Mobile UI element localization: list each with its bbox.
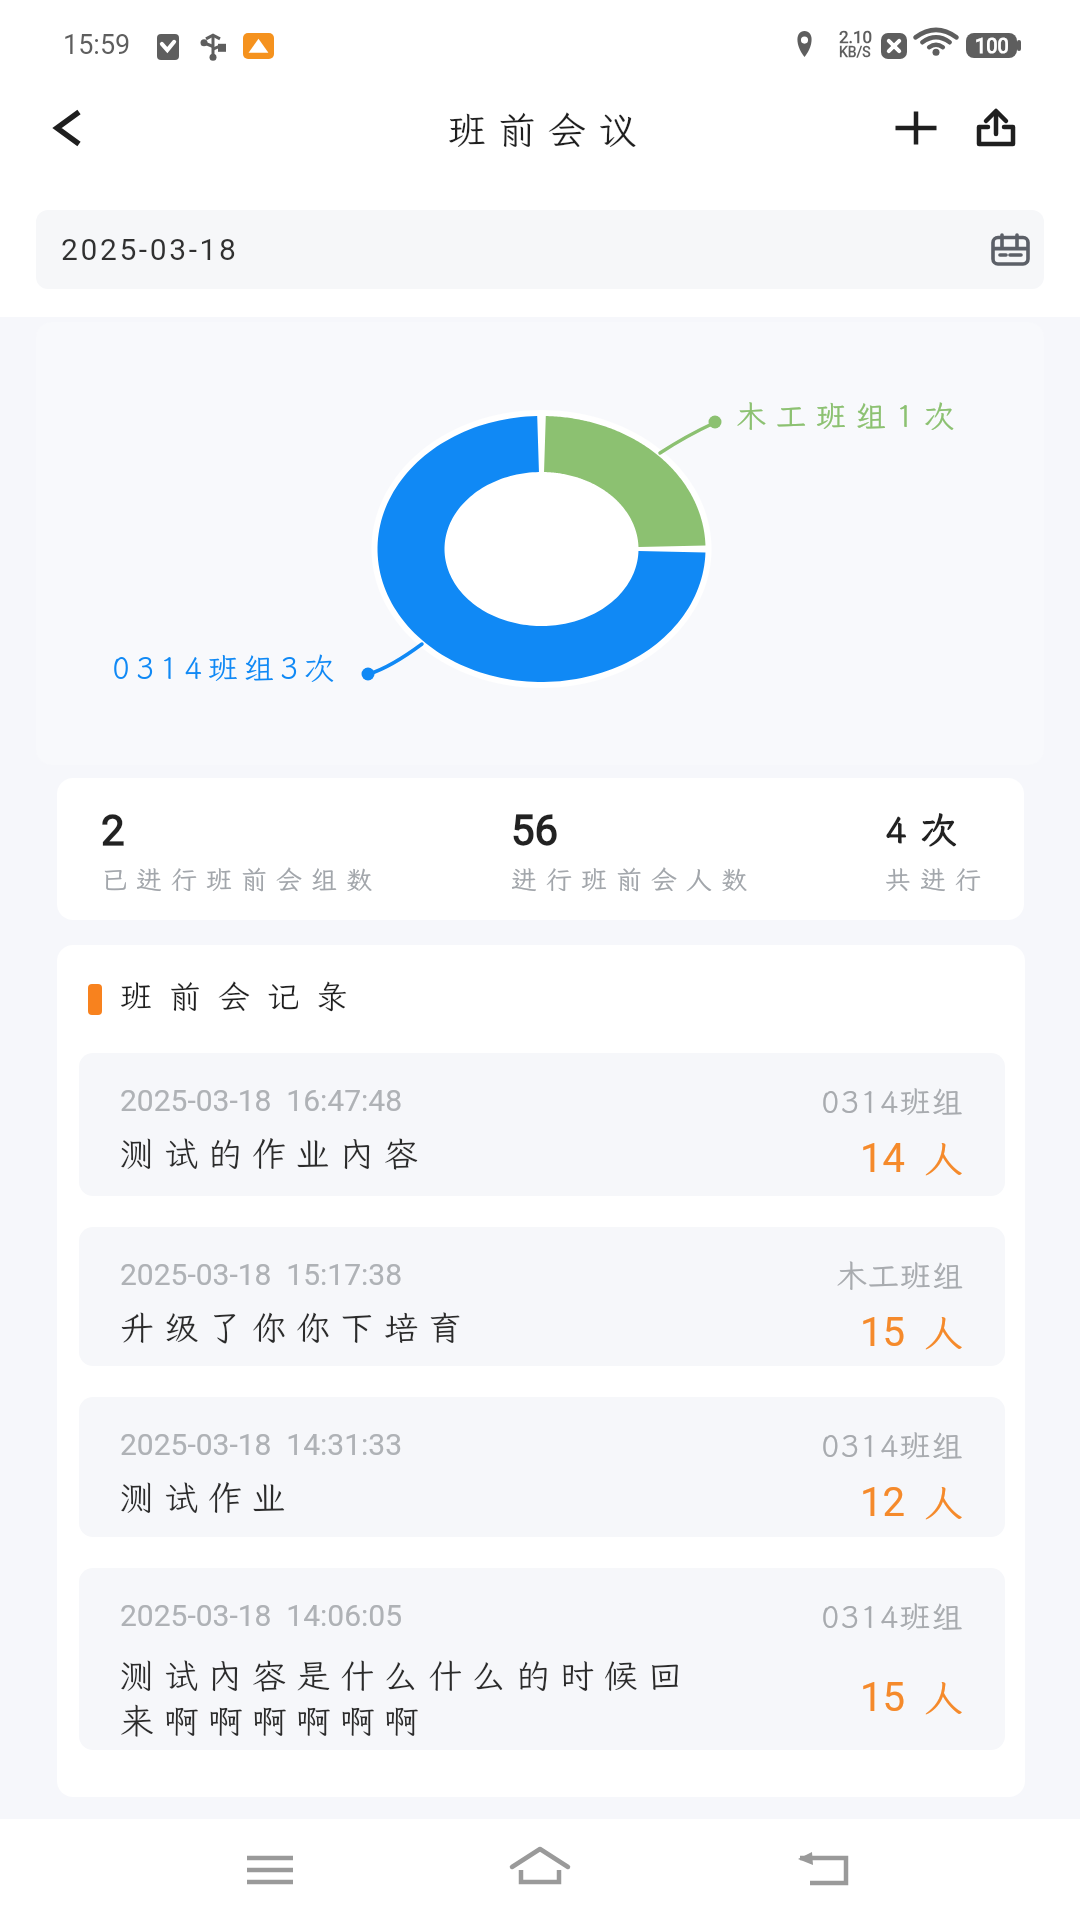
staticText: 进行班前会人数 (511, 862, 757, 896)
staticText: 15:59 (63, 29, 131, 61)
staticText: 56 (511, 806, 559, 855)
button[interactable]: 2025-03-18 16:47:48 (79, 1053, 1005, 1196)
staticText: 100 (975, 34, 1009, 57)
staticText: 2025-03-18 16:47:48 (120, 1083, 403, 1118)
button[interactable]: Back (18, 90, 112, 166)
button[interactable]: 2025-03-18 (36, 210, 1044, 289)
staticText: 人 (925, 1672, 964, 1722)
staticText: 人 (925, 1307, 964, 1357)
staticText: 2025-03-18 (61, 232, 239, 267)
staticText: 2025-03-18 14:06:05 (120, 1598, 403, 1633)
button[interactable]: 2025-03-18 14:06:05 (79, 1568, 1005, 1750)
staticText: 4次 (885, 806, 971, 853)
staticText: 测试内容是什么什么的时候回来啊啊啊啊啊啊 (120, 1653, 700, 1743)
button[interactable]: Add (875, 90, 957, 166)
staticText: 人 (925, 1477, 964, 1527)
staticText: 木工班组1次 (736, 396, 964, 436)
staticText: 班前会议 (448, 105, 649, 155)
staticText: 升级了你你下培育 (120, 1305, 700, 1350)
staticText: 测试的作业内容 (120, 1131, 700, 1176)
staticText: 0314班组 (821, 1596, 964, 1637)
staticText: 14 (860, 1135, 905, 1182)
button[interactable]: Share (956, 90, 1036, 166)
staticText: 0314班组3次 (112, 648, 340, 688)
button[interactable]: Recent apps (225, 1825, 315, 1915)
staticText: 人 (925, 1133, 964, 1183)
staticText: 2025-03-18 15:17:38 (120, 1257, 403, 1292)
staticText: KB/S (839, 44, 871, 60)
staticText: 12 (860, 1479, 905, 1526)
staticText: 0314班组 (821, 1081, 964, 1122)
staticText: 2025-03-18 14:31:33 (120, 1427, 403, 1462)
button[interactable]: 2025-03-18 14:31:33 (79, 1397, 1005, 1537)
staticText: 共进行 (885, 862, 991, 896)
button[interactable]: Home (495, 1810, 585, 1900)
staticText: 班前会记录 (120, 975, 366, 1017)
staticText: 木工班组 (836, 1255, 964, 1296)
button[interactable]: 2025-03-18 15:17:38 (79, 1227, 1005, 1366)
button[interactable]: Back (777, 1825, 867, 1915)
staticText: 15 (860, 1309, 905, 1356)
staticText: 15 (860, 1674, 905, 1721)
staticText: 测试作业 (120, 1475, 700, 1520)
staticText: 0314班组 (821, 1425, 964, 1466)
staticText: 2.10 (839, 27, 873, 47)
staticText: 已进行班前会组数 (101, 862, 382, 896)
staticText: 2 (101, 806, 125, 855)
